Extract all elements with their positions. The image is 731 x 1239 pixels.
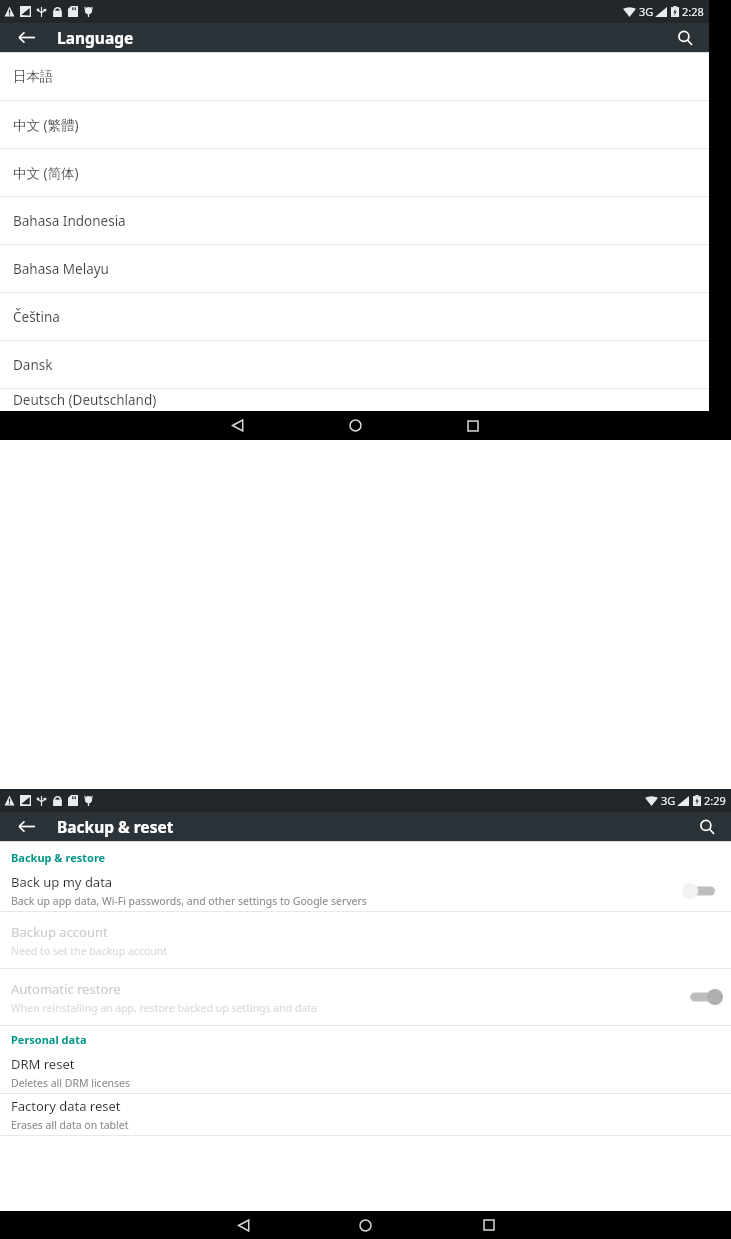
staticText: 3G	[661, 793, 676, 808]
button[interactable]: Back up my data	[0, 870, 731, 912]
staticText: 2:29	[704, 793, 726, 808]
staticText: Bahasa Melayu	[13, 260, 109, 278]
button[interactable]: Back	[221, 411, 253, 440]
staticText: Deletes all DRM licenses	[11, 1076, 131, 1090]
staticText: Deutsch (Deutschland)	[13, 391, 157, 409]
button[interactable]: Back up my data	[683, 880, 723, 902]
button[interactable]: 中文 (简体)	[0, 149, 709, 197]
button[interactable]: Search	[690, 812, 724, 841]
staticText: Backup account	[11, 923, 108, 941]
button[interactable]: DRM reset	[0, 1052, 731, 1094]
staticText: Backup & restore	[11, 850, 106, 865]
button[interactable]: Bahasa Melayu	[0, 245, 709, 293]
button[interactable]: Deutsch (Deutschland)	[0, 389, 709, 411]
staticText: When reinstalling an app, restore backed…	[11, 1001, 317, 1015]
button[interactable]: Back	[227, 1211, 259, 1239]
staticText: Back up app data, Wi-Fi passwords, and o…	[11, 894, 367, 908]
staticText: Erases all data on tablet	[11, 1118, 129, 1132]
staticText: Language	[57, 27, 134, 48]
button[interactable]: Factory data reset	[0, 1094, 731, 1136]
button[interactable]: Search	[668, 23, 702, 52]
staticText: 2:28	[682, 4, 704, 19]
button[interactable]: Automatic restore	[683, 986, 723, 1008]
button[interactable]: Bahasa Indonesia	[0, 197, 709, 245]
button[interactable]: Back	[9, 812, 43, 841]
button[interactable]: 日本語	[0, 53, 709, 101]
staticText: Personal data	[11, 1032, 87, 1047]
staticText: Dansk	[13, 356, 53, 374]
staticText: Čeština	[13, 308, 60, 326]
button[interactable]: Home	[339, 411, 371, 440]
staticText: 中文 (简体)	[13, 164, 79, 182]
button[interactable]: Back	[9, 23, 43, 52]
staticText: DRM reset	[11, 1055, 75, 1073]
button[interactable]: Home	[349, 1211, 381, 1239]
staticText: 日本語	[13, 68, 54, 85]
staticText: Back up my data	[11, 873, 113, 891]
staticText: 3G	[639, 4, 654, 19]
button[interactable]: Recent apps	[473, 1211, 505, 1239]
staticText: Bahasa Indonesia	[13, 212, 126, 230]
button[interactable]: Dansk	[0, 341, 709, 389]
button[interactable]: Recent apps	[457, 411, 489, 440]
staticText: Factory data reset	[11, 1097, 121, 1115]
button[interactable]: Backup account	[0, 912, 731, 969]
button[interactable]: 中文 (繁體)	[0, 101, 709, 149]
button[interactable]: Automatic restore	[0, 969, 731, 1026]
staticText: Automatic restore	[11, 980, 121, 998]
staticText: 中文 (繁體)	[13, 116, 79, 134]
button[interactable]: Čeština	[0, 293, 709, 341]
staticText: Backup & reset	[57, 816, 174, 837]
staticText: Need to set the backup account	[11, 944, 168, 958]
